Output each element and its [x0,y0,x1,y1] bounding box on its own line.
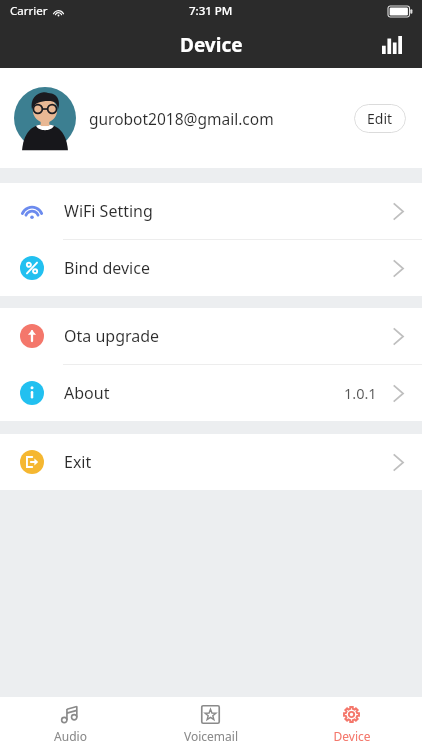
button[interactable]: Audio [0,697,140,750]
staticText: Carrier [10,3,48,19]
staticText: About [64,382,110,404]
staticText: Voicemail [184,728,238,744]
button[interactable]: Device [281,697,422,750]
button[interactable]: Exit [0,434,422,490]
staticText: Exit [64,451,92,473]
button[interactable]: Voicemail [140,697,281,750]
button[interactable]: Ota upgrade [0,308,422,364]
staticText: Edit [367,109,393,128]
button[interactable]: About [0,365,422,421]
button[interactable]: WiFi Setting [0,183,422,239]
staticText: WiFi Setting [64,200,153,222]
button[interactable]: Bind device [0,240,422,296]
button[interactable]: Statistics [372,25,412,65]
staticText: 1.0.1 [344,383,377,403]
staticText: Device [180,32,243,58]
staticText: 7:31 PM [189,3,233,19]
staticText: Bind device [64,257,150,279]
staticText: Device [333,728,371,744]
staticText: Audio [54,728,87,744]
staticText: Ota upgrade [64,325,160,347]
staticText: gurobot2018@gmail.com [89,108,274,129]
button[interactable]: Edit [354,104,406,133]
